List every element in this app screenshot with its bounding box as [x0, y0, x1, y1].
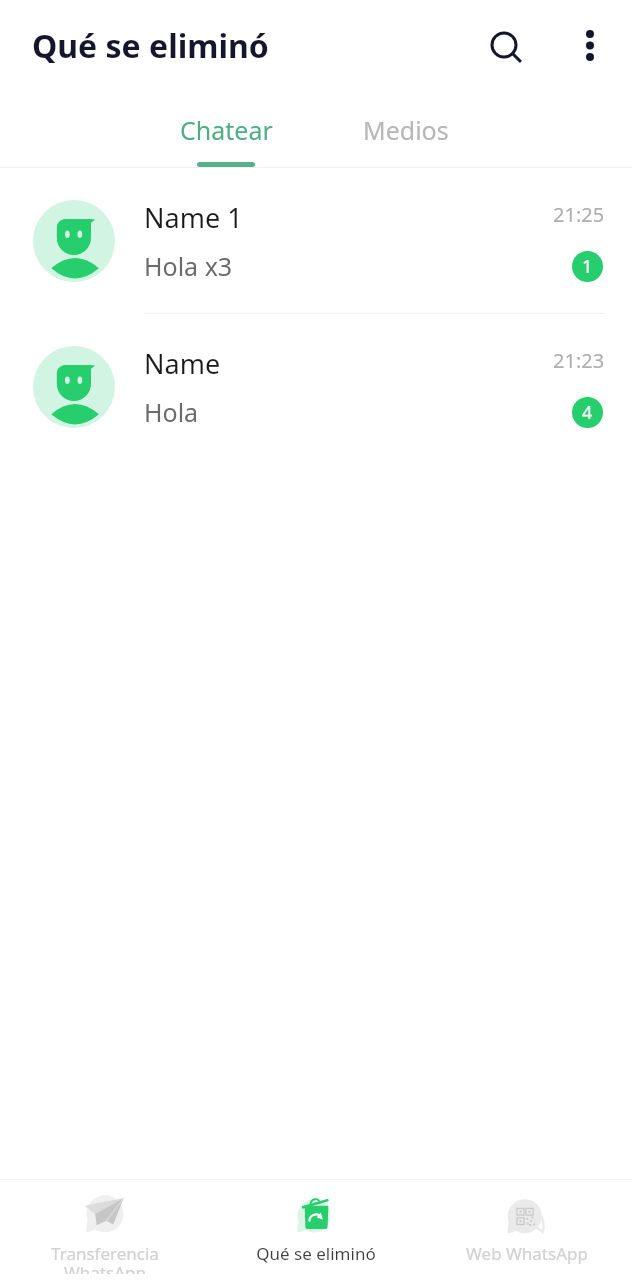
staticText: Web WhatsApp [466, 1242, 588, 1265]
button[interactable]: Search [480, 21, 528, 69]
staticText: 21:23 [553, 347, 605, 374]
button[interactable]: Web WhatsApp [421, 1180, 632, 1280]
button[interactable]: More options [566, 22, 614, 70]
staticText: Hola [144, 395, 199, 429]
button[interactable]: Medios [316, 92, 632, 167]
button[interactable]: Transferencia WhatsApp [0, 1180, 210, 1280]
button[interactable]: Name 1 [0, 168, 632, 313]
button[interactable]: Chatear [0, 92, 316, 167]
staticText: 21:25 [553, 201, 605, 228]
staticText: Chatear [180, 113, 273, 147]
staticText: Qué se eliminó [32, 24, 269, 68]
staticText: Qué se eliminó [256, 1242, 376, 1265]
staticText: Name [144, 345, 221, 382]
staticText: 1 [582, 254, 593, 279]
staticText: Name 1 [144, 199, 243, 236]
staticText: Medios [363, 113, 449, 147]
button[interactable]: Name [0, 314, 632, 459]
staticText: Transferencia WhatsApp [51, 1242, 159, 1274]
staticText: Hola x3 [144, 249, 233, 283]
staticText: 4 [582, 400, 593, 425]
button[interactable]: Qué se eliminó [210, 1180, 421, 1280]
